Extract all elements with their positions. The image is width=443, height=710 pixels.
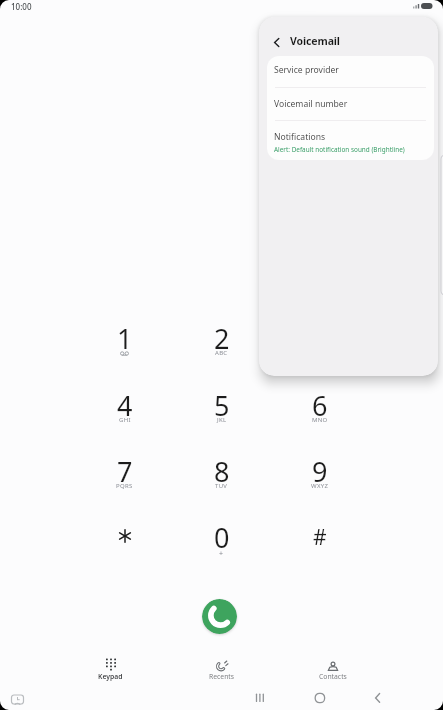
staticText: 10:00 xyxy=(11,1,32,12)
staticText: 7 xyxy=(117,453,133,490)
staticText: 0 xyxy=(214,519,230,556)
staticText: 6 xyxy=(312,387,328,424)
button[interactable]: Voicemail number xyxy=(267,88,434,120)
staticText: JKL xyxy=(217,416,227,424)
staticText: TUV xyxy=(215,482,228,490)
button[interactable]: Notifications xyxy=(267,121,434,160)
staticText: Notifications xyxy=(274,131,326,143)
staticText: Keypad xyxy=(98,672,123,681)
staticText: Alert: Default notification sound (Brigh… xyxy=(274,145,405,154)
button[interactable] xyxy=(248,688,272,708)
button[interactable]: Service provider xyxy=(267,56,434,87)
button[interactable]: 5 xyxy=(173,372,270,438)
button[interactable]: Recents xyxy=(166,652,277,681)
staticText: MNO xyxy=(312,416,328,424)
button[interactable]: 0 xyxy=(173,504,270,570)
button[interactable] xyxy=(366,688,390,708)
button[interactable]: 4 xyxy=(76,372,173,438)
staticText: Service provider xyxy=(274,64,339,76)
button[interactable]: 6 xyxy=(271,372,368,438)
staticText: # xyxy=(313,523,327,552)
button[interactable]: Contacts xyxy=(277,652,388,681)
staticText: + xyxy=(219,549,224,559)
staticText: 1 xyxy=(117,320,133,357)
staticText: Voicemail xyxy=(290,34,340,48)
staticText: 5 xyxy=(214,387,230,424)
button[interactable] xyxy=(8,690,28,708)
button[interactable]: 9 xyxy=(271,438,368,504)
staticText: 2 xyxy=(214,320,230,357)
staticText: PQRS xyxy=(116,482,133,490)
staticText: GHI xyxy=(119,416,131,424)
staticText: Voicemail number xyxy=(274,98,348,110)
button[interactable]: 7 xyxy=(76,438,173,504)
staticText: 8 xyxy=(214,453,230,490)
button[interactable] xyxy=(76,504,173,570)
button[interactable]: Keypad xyxy=(55,652,166,681)
staticText: ABC xyxy=(215,349,228,357)
staticText: 4 xyxy=(117,387,133,424)
button[interactable]: 1 xyxy=(76,305,173,371)
button[interactable]: 8 xyxy=(173,438,270,504)
button[interactable] xyxy=(268,34,285,51)
button[interactable] xyxy=(202,599,237,634)
staticText: 9 xyxy=(312,453,328,490)
staticText: Recents xyxy=(209,672,235,681)
staticText: WXYZ xyxy=(311,482,329,490)
button[interactable]: # xyxy=(271,504,368,570)
button[interactable] xyxy=(308,688,332,708)
staticText: Contacts xyxy=(319,672,347,681)
button[interactable]: 2 xyxy=(173,305,270,371)
